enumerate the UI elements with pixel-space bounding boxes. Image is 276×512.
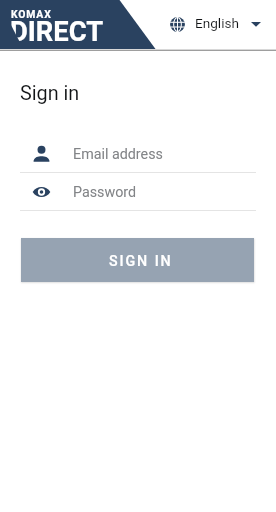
button[interactable]: Show password — [20, 179, 256, 211]
staticText: English — [195, 15, 239, 31]
other: Select language — [170, 17, 185, 32]
staticText: DIRECT — [10, 16, 104, 48]
other: Account — [33, 145, 50, 162]
button[interactable]: Select language — [162, 6, 270, 39]
other: Show password — [33, 183, 50, 200]
staticText: SIGN IN — [109, 253, 173, 270]
staticText: KOMAX — [11, 8, 52, 20]
staticText: Email address — [73, 146, 163, 163]
button[interactable]: Account — [20, 141, 256, 173]
staticText: Sign in — [20, 82, 80, 105]
button[interactable]: SIGN IN — [21, 238, 254, 282]
staticText: Password — [73, 184, 137, 201]
button[interactable]: KOMAX — [0, 0, 110, 49]
